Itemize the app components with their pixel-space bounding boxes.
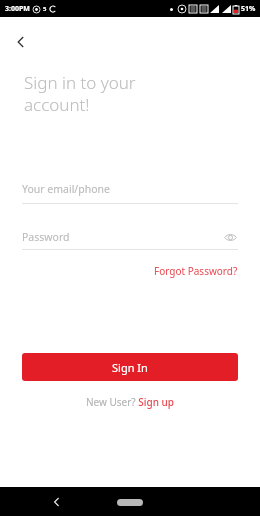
- staticText: 51%: [241, 4, 256, 14]
- button[interactable]: New User? Sign up: [86, 395, 175, 409]
- staticText: 3:00PM: [5, 4, 30, 14]
- staticText: Forgot Password?: [154, 264, 238, 278]
- staticText: Your email/phone: [22, 182, 110, 196]
- staticText: 5: [43, 5, 47, 13]
- button[interactable]: Back: [44, 489, 70, 515]
- button[interactable]: Password: [22, 229, 238, 250]
- button[interactable]: Back: [6, 27, 36, 57]
- button[interactable]: Sign In: [22, 353, 238, 381]
- staticText: New User? Sign up: [86, 395, 175, 409]
- button[interactable]: Home: [108, 493, 152, 511]
- button[interactable]: Your email/phone: [22, 182, 238, 204]
- button[interactable]: Forgot Password?: [154, 262, 238, 280]
- staticText: Password: [22, 230, 222, 244]
- button[interactable]: Show password: [222, 229, 238, 245]
- staticText: Sign In: [112, 360, 148, 375]
- staticText: Sign in to your account!: [24, 71, 136, 116]
